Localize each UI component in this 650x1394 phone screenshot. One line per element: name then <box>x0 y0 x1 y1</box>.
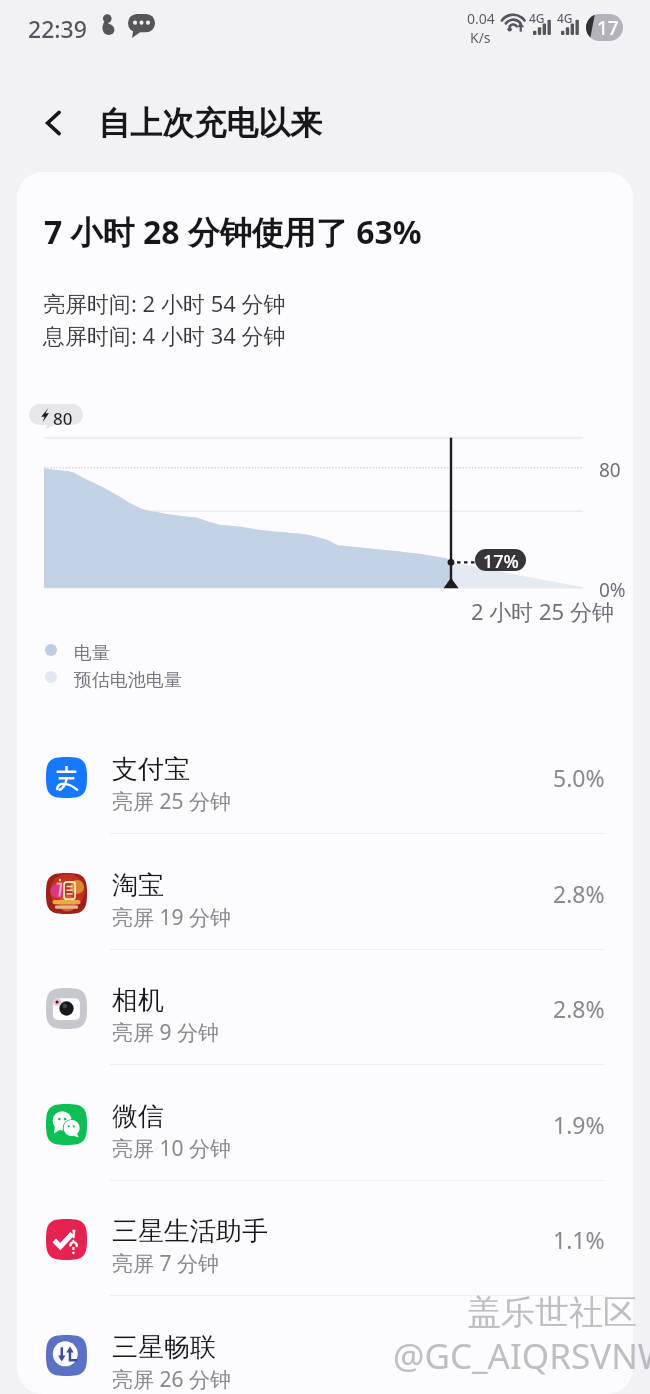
staticText: 2 小时 25 分钟 <box>471 596 614 626</box>
staticText: 80 <box>53 407 73 425</box>
staticText: 4G <box>557 10 573 26</box>
staticText: 息屏时间: 4 小时 34 分钟 <box>43 320 286 350</box>
staticText: 三星生活助手 <box>112 1215 268 1248</box>
staticText: 亮屏 9 分钟 <box>112 1018 219 1047</box>
staticText: 1.1% <box>553 1224 605 1255</box>
staticText: 5.0% <box>553 762 605 793</box>
staticText: 2.8% <box>553 993 605 1024</box>
staticText: 0% <box>599 577 626 603</box>
button[interactable]: 相机 <box>17 949 633 1065</box>
staticText: 预估电池电量 <box>74 669 182 692</box>
button[interactable]: Back <box>31 100 77 146</box>
button[interactable]: 支付宝 <box>17 718 633 834</box>
button[interactable]: 淘宝 <box>17 834 633 950</box>
staticText: 2.8% <box>553 878 605 909</box>
button[interactable]: 微信 <box>17 1065 633 1181</box>
staticText: 自上次充电以来 <box>98 103 322 143</box>
staticText: 17 <box>597 15 619 41</box>
staticText: 4G <box>529 10 545 26</box>
staticText: 80 <box>599 457 621 483</box>
staticText: 1.9% <box>553 1109 605 1140</box>
staticText: K/s <box>470 28 491 47</box>
staticText: 盖乐世社区 <box>467 1291 637 1334</box>
staticText: 相机 <box>112 984 164 1017</box>
staticText: @GC_AIQRSVNW <box>393 1332 650 1380</box>
staticText: 亮屏时间: 2 小时 54 分钟 <box>43 288 286 318</box>
button[interactable]: 三星生活助手 <box>17 1180 633 1296</box>
staticText: 17% <box>483 549 519 571</box>
staticText: 亮屏 26 分钟 <box>112 1365 231 1394</box>
staticText: 支付宝 <box>112 753 190 786</box>
staticText: 亮屏 10 分钟 <box>112 1134 231 1163</box>
staticText: 亮屏 25 分钟 <box>112 787 231 816</box>
staticText: 亮屏 19 分钟 <box>112 903 231 932</box>
staticText: 22:39 <box>28 13 87 44</box>
staticText: 0.04 <box>467 9 495 28</box>
staticText: 7 小时 28 分钟使用了 63% <box>44 210 422 254</box>
staticText: 微信 <box>112 1100 164 1133</box>
staticText: 电量 <box>74 642 110 665</box>
staticText: 亮屏 7 分钟 <box>112 1249 219 1278</box>
staticText: 三星畅联 <box>112 1331 216 1364</box>
button[interactable]: 三星畅联 <box>17 1296 633 1394</box>
staticText: 淘宝 <box>112 869 164 902</box>
